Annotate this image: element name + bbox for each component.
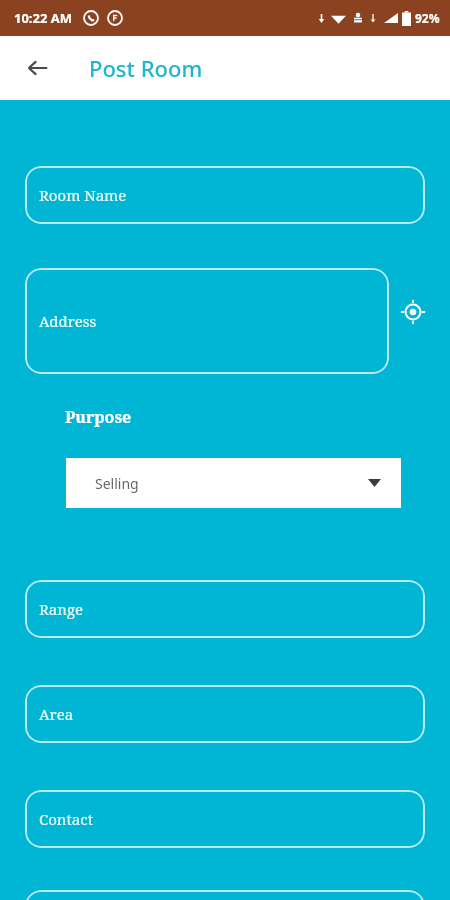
button[interactable]: Back xyxy=(18,48,58,88)
button[interactable] xyxy=(25,890,425,900)
staticText: Selling xyxy=(95,474,139,493)
button[interactable]: Area xyxy=(25,685,425,743)
button[interactable]: Contact xyxy=(25,790,425,848)
staticText: Range xyxy=(39,599,84,619)
staticText: Address xyxy=(39,311,97,331)
button[interactable]: Use my location xyxy=(396,295,430,329)
button[interactable]: Address xyxy=(25,268,389,374)
button[interactable]: Range xyxy=(25,580,425,638)
button[interactable]: Room Name xyxy=(25,166,425,224)
button[interactable]: Selling xyxy=(66,458,401,508)
staticText: Area xyxy=(39,704,74,724)
staticText: Contact xyxy=(39,809,93,829)
staticText: Purpose xyxy=(65,406,132,428)
staticText: 92% xyxy=(415,10,440,26)
staticText: 10:22 AM xyxy=(14,9,73,27)
staticText: Room Name xyxy=(39,185,127,205)
staticText: Post Room xyxy=(89,53,203,83)
